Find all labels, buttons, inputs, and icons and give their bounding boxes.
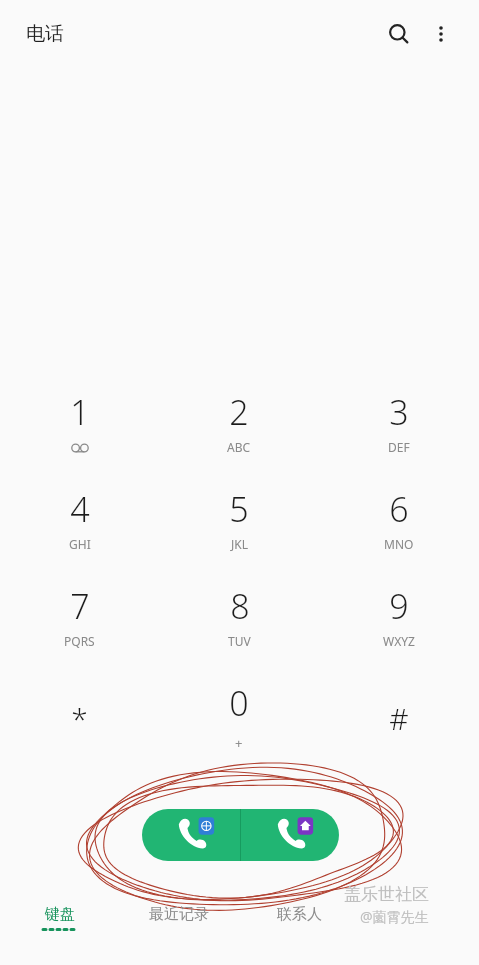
staticText: GHI: [69, 536, 91, 552]
button[interactable]: 9: [319, 579, 479, 676]
button[interactable]: #: [319, 676, 479, 773]
staticText: +: [235, 734, 243, 752]
staticText: @薗霄先生: [360, 907, 429, 926]
button[interactable]: 联系人: [239, 905, 359, 951]
staticText: 7: [70, 583, 90, 629]
staticText: 2: [229, 389, 249, 435]
staticText: PQRS: [64, 633, 95, 649]
staticText: 电话: [26, 22, 64, 46]
staticText: 1: [70, 389, 90, 435]
staticText: MNO: [384, 536, 414, 552]
staticText: ABC: [227, 439, 251, 455]
button[interactable]: Call with SIM 2: [241, 809, 339, 861]
staticText: 3: [389, 389, 409, 435]
staticText: 最近记录: [149, 905, 209, 924]
button[interactable]: 1: [0, 385, 159, 482]
staticText: 6: [389, 486, 409, 532]
staticText: JKL: [231, 536, 248, 552]
staticText: *: [71, 698, 88, 739]
staticText: 键盘: [45, 905, 75, 924]
staticText: 4: [70, 486, 90, 532]
staticText: TUV: [228, 633, 251, 649]
staticText: 5: [229, 486, 249, 532]
staticText: 盖乐世社区: [344, 884, 429, 905]
button[interactable]: 最近记录: [119, 905, 239, 951]
button[interactable]: 4: [0, 482, 159, 579]
staticText: #: [389, 698, 409, 739]
button[interactable]: 8: [159, 579, 319, 676]
staticText: 9: [389, 583, 409, 629]
button[interactable]: *: [0, 676, 159, 773]
staticText: 8: [230, 583, 250, 629]
button[interactable]: 0: [159, 676, 319, 773]
button[interactable]: 键盘: [0, 905, 119, 951]
button[interactable]: 3: [319, 385, 479, 482]
staticText: WXYZ: [383, 633, 415, 649]
button[interactable]: More options: [419, 12, 463, 56]
button[interactable]: 6: [319, 482, 479, 579]
button[interactable]: 7: [0, 579, 159, 676]
staticText: 联系人: [277, 905, 322, 924]
staticText: 0: [229, 680, 249, 726]
button[interactable]: 2: [159, 385, 319, 482]
button[interactable]: 5: [159, 482, 319, 579]
staticText: DEF: [388, 439, 410, 455]
button[interactable]: Call with SIM 1: [142, 809, 240, 861]
button[interactable]: Search: [377, 12, 421, 56]
